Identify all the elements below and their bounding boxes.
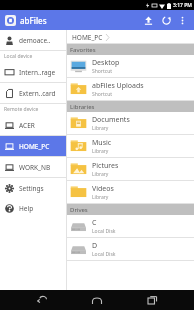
staticText: Local device xyxy=(4,53,33,60)
button[interactable]: ACER xyxy=(0,115,66,135)
staticText: Desktop xyxy=(92,58,120,68)
staticText: Settings xyxy=(19,184,44,193)
staticText: Music xyxy=(92,138,112,148)
button[interactable]: HOME_PC xyxy=(71,33,104,42)
button[interactable]: Recents xyxy=(139,290,165,310)
button[interactable]: Extern..card xyxy=(0,83,66,103)
button[interactable]: Refresh xyxy=(157,11,175,29)
staticText: D xyxy=(92,241,98,251)
button[interactable]: More options xyxy=(175,13,189,27)
staticText: Libraries xyxy=(70,103,95,111)
button[interactable]: Pictures xyxy=(67,158,194,180)
staticText: Library xyxy=(92,148,109,155)
staticText: HOME_PC xyxy=(72,33,103,42)
button[interactable]: Home xyxy=(84,290,110,310)
button[interactable]: Desktop xyxy=(67,55,194,77)
staticText: Shortcut xyxy=(92,68,113,75)
staticText: Help xyxy=(19,204,34,213)
staticText: C xyxy=(92,218,97,228)
button[interactable]: Help xyxy=(0,198,66,218)
button[interactable]: Settings xyxy=(0,178,66,198)
staticText: Library xyxy=(92,125,109,132)
staticText: Library xyxy=(92,171,109,178)
button[interactable]: WORK_NB xyxy=(0,157,66,177)
staticText: Library xyxy=(92,194,109,201)
staticText: Drives xyxy=(70,206,88,214)
staticText: Intern..rage xyxy=(19,68,56,77)
staticText: Extern..card xyxy=(19,89,56,98)
button[interactable]: demoace.. xyxy=(0,30,66,50)
staticText: 3:17 PM xyxy=(173,2,192,9)
staticText: abFiles Uploads xyxy=(92,81,144,91)
staticText: Documents xyxy=(92,115,130,125)
staticText: HOME_PC xyxy=(19,142,50,151)
button[interactable]: Upload xyxy=(139,11,157,29)
staticText: ACER xyxy=(19,121,35,130)
button[interactable]: Back xyxy=(29,290,55,310)
staticText: Local Disk xyxy=(92,251,116,258)
button[interactable]: Videos xyxy=(67,181,194,203)
staticText: demoace.. xyxy=(19,36,51,45)
staticText: Remote device xyxy=(4,106,39,113)
button[interactable]: HOME_PC xyxy=(0,136,66,156)
staticText: WORK_NB xyxy=(19,163,51,172)
staticText: Shortcut xyxy=(92,91,113,98)
staticText: Local Disk xyxy=(92,228,116,235)
button[interactable]: C xyxy=(67,215,194,237)
staticText: Videos xyxy=(92,184,114,194)
button[interactable]: abFiles Uploads xyxy=(67,78,194,100)
button[interactable]: D xyxy=(67,238,194,260)
staticText: Favorites xyxy=(70,46,96,54)
button[interactable]: Music xyxy=(67,135,194,157)
button[interactable]: Documents xyxy=(67,112,194,134)
button[interactable]: Intern..rage xyxy=(0,62,66,82)
button[interactable]: App icon xyxy=(5,15,16,26)
staticText: Pictures xyxy=(92,161,119,171)
staticText: abFiles xyxy=(20,15,47,26)
